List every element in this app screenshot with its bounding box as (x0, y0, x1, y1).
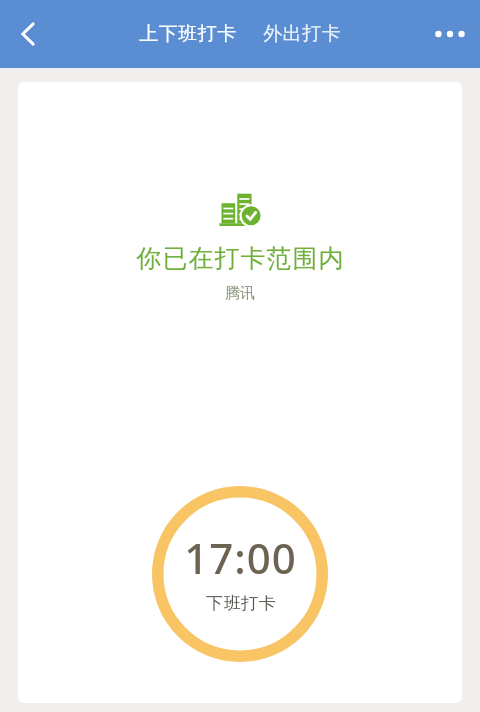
button[interactable]: 外出打卡 (258, 14, 346, 54)
button[interactable]: 17:00 (152, 486, 328, 662)
staticText: 腾讯 (225, 284, 255, 303)
button[interactable]: Back (0, 0, 56, 68)
staticText: 外出打卡 (263, 22, 341, 46)
button[interactable]: 上下班打卡 (134, 14, 242, 54)
button[interactable]: More options (420, 0, 480, 68)
staticText: 17:00 (184, 529, 297, 586)
staticText: 上下班打卡 (139, 22, 237, 46)
staticText: 下班打卡 (206, 593, 276, 614)
staticText: 你已在打卡范围内 (136, 243, 344, 274)
